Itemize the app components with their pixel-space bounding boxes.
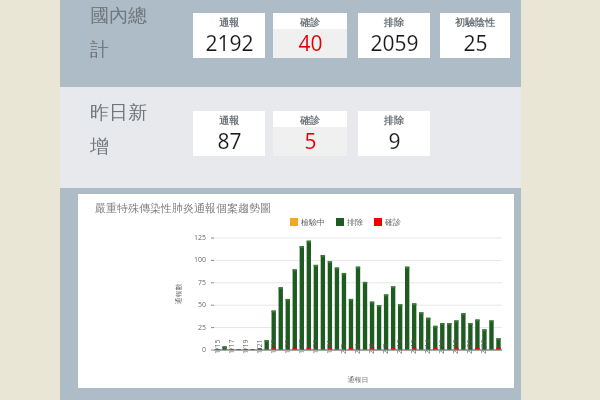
button[interactable]: 確診 <box>374 217 401 227</box>
staticText: 40 <box>298 29 323 58</box>
staticText: 87 <box>217 127 242 156</box>
staticText: 檢驗中 <box>301 217 325 227</box>
staticText: 排除 <box>347 217 363 227</box>
staticText: 嚴重特殊傳染性肺炎通報個案趨勢圖 <box>95 201 271 215</box>
staticText: 排除 <box>384 114 404 127</box>
staticText: 25 <box>463 29 488 58</box>
staticText: 9 <box>388 127 401 156</box>
button[interactable]: 通報 <box>193 111 265 156</box>
button[interactable]: 初驗陰性 <box>440 13 510 58</box>
button[interactable]: 確診 <box>273 13 347 58</box>
button[interactable]: 排除 <box>358 13 430 58</box>
button[interactable]: 通報 <box>193 13 265 58</box>
staticText: 排除 <box>384 16 404 29</box>
staticText: 國內總 計 <box>90 4 147 61</box>
staticText: 確診 <box>300 16 320 29</box>
button[interactable]: 排除 <box>358 111 430 156</box>
staticText: 2192 <box>205 29 254 58</box>
staticText: 初驗陰性 <box>455 16 495 29</box>
staticText: 昨日新 增 <box>90 101 147 158</box>
staticText: 確診 <box>300 114 320 127</box>
button[interactable]: 排除 <box>336 217 363 227</box>
staticText: 通報 <box>219 16 239 29</box>
staticText: 5 <box>304 127 317 156</box>
button[interactable]: 確診 <box>273 111 347 156</box>
staticText: 2059 <box>370 29 419 58</box>
staticText: 通報 <box>219 114 239 127</box>
button[interactable]: 嚴重特殊傳染性肺炎通報個案趨勢圖 <box>78 194 514 388</box>
button[interactable]: 檢驗中 <box>290 217 325 227</box>
staticText: 確診 <box>385 217 401 227</box>
